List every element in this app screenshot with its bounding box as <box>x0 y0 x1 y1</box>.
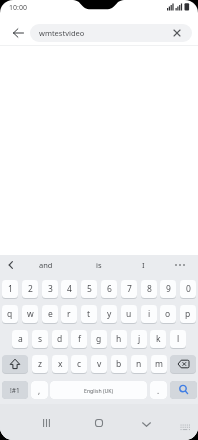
staticText: a <box>18 333 23 345</box>
staticText: v <box>97 358 102 370</box>
button[interactable]: English (UK) <box>50 381 147 399</box>
staticText: English (UK) <box>84 387 114 394</box>
button[interactable]: b <box>111 355 127 373</box>
button[interactable]: d <box>52 330 68 348</box>
button[interactable]: i <box>141 305 157 323</box>
staticText: 6 <box>107 283 112 295</box>
staticText: f <box>78 333 81 345</box>
staticText: t <box>87 308 91 320</box>
button[interactable]: !#1 <box>2 381 28 399</box>
button[interactable]: 1 <box>2 280 18 298</box>
staticText: 5 <box>87 283 92 295</box>
staticText: p <box>185 308 191 320</box>
staticText: !#1 <box>10 386 20 395</box>
button[interactable]: j <box>131 330 147 348</box>
staticText: u <box>126 308 132 320</box>
button[interactable]: 9 <box>160 280 176 298</box>
staticText: h <box>116 333 122 345</box>
staticText: . <box>157 385 160 396</box>
staticText: 8 <box>147 283 152 295</box>
button[interactable]: 6 <box>101 280 117 298</box>
button[interactable]: 4 <box>61 280 77 298</box>
staticText: g <box>96 333 102 345</box>
button[interactable] <box>36 414 56 432</box>
button[interactable]: f <box>71 330 87 348</box>
button[interactable]: q <box>2 305 18 323</box>
button[interactable]: and <box>30 256 62 274</box>
button[interactable]: w <box>22 305 38 323</box>
button[interactable] <box>170 355 196 373</box>
staticText: 10:00 <box>9 3 27 13</box>
button[interactable]: x <box>52 355 68 373</box>
button[interactable]: n <box>131 355 147 373</box>
staticText: i <box>148 308 151 320</box>
staticText: y <box>107 308 112 320</box>
staticText: w <box>27 308 34 320</box>
button[interactable]: l <box>170 330 186 348</box>
staticText: k <box>156 333 161 345</box>
button[interactable]: , <box>31 381 48 399</box>
button[interactable]: h <box>111 330 127 348</box>
button[interactable]: wmtestvideo <box>30 24 192 42</box>
button[interactable]: c <box>71 355 87 373</box>
button[interactable]: e <box>42 305 58 323</box>
staticText: 4 <box>67 283 72 295</box>
button[interactable]: s <box>32 330 48 348</box>
staticText: l <box>177 333 180 345</box>
button[interactable]: k <box>150 330 166 348</box>
button[interactable] <box>89 414 109 432</box>
button[interactable]: 2 <box>22 280 38 298</box>
staticText: and <box>39 260 53 270</box>
button[interactable]: 0 <box>180 280 196 298</box>
staticText: 7 <box>127 283 132 295</box>
staticText: o <box>165 308 171 320</box>
button[interactable]: is <box>83 256 115 274</box>
button[interactable]: a <box>12 330 28 348</box>
staticText: c <box>77 358 82 370</box>
button[interactable]: 7 <box>121 280 137 298</box>
button[interactable] <box>170 256 190 274</box>
button[interactable]: o <box>160 305 176 323</box>
button[interactable]: v <box>91 355 107 373</box>
staticText: x <box>58 358 63 370</box>
button[interactable]: p <box>180 305 196 323</box>
button[interactable]: I <box>127 256 159 274</box>
button[interactable]: 5 <box>81 280 97 298</box>
button[interactable]: t <box>81 305 97 323</box>
button[interactable]: g <box>91 330 107 348</box>
staticText: q <box>7 308 13 320</box>
button[interactable]: m <box>151 355 167 373</box>
staticText: 3 <box>48 283 53 295</box>
button[interactable] <box>2 256 20 274</box>
staticText: is <box>96 260 102 270</box>
staticText: wmtestvideo <box>39 28 85 38</box>
staticText: r <box>67 308 71 320</box>
button[interactable] <box>2 355 28 373</box>
button[interactable]: . <box>150 381 167 399</box>
staticText: e <box>48 308 53 320</box>
button[interactable]: r <box>61 305 77 323</box>
button[interactable]: y <box>101 305 117 323</box>
staticText: j <box>138 333 141 345</box>
staticText: 9 <box>166 283 171 295</box>
staticText: m <box>155 358 163 370</box>
staticText: b <box>116 358 122 370</box>
button[interactable] <box>170 381 197 399</box>
staticText: I <box>142 260 145 270</box>
button[interactable]: 3 <box>42 280 58 298</box>
staticText: n <box>136 358 142 370</box>
button[interactable]: u <box>121 305 137 323</box>
staticText: 0 <box>186 283 191 295</box>
button[interactable]: 8 <box>141 280 157 298</box>
staticText: 1 <box>8 283 13 295</box>
staticText: s <box>38 333 43 345</box>
button[interactable] <box>136 416 156 432</box>
staticText: z <box>38 358 42 370</box>
staticText: 2 <box>28 283 33 295</box>
button[interactable]: z <box>32 355 48 373</box>
button[interactable] <box>12 23 32 43</box>
staticText: , <box>38 385 41 396</box>
staticText: d <box>57 333 63 345</box>
